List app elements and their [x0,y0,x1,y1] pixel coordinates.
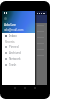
staticText: Archived [9,51,21,55]
staticText: Recents [5,40,15,44]
staticText: ada@mail.com [4,28,24,32]
staticText: Network [9,57,21,61]
button[interactable]: Trash [2,62,35,68]
button[interactable]: Network [2,56,35,62]
staticText: Trash [9,63,17,67]
button[interactable]: Archived [2,50,35,56]
button[interactable]: Inbox [2,33,35,39]
staticText: Inbox [9,34,17,38]
staticText: Ada Lee [4,23,16,27]
staticText: Pinned [9,45,19,49]
button[interactable]: Pinned [2,44,35,50]
